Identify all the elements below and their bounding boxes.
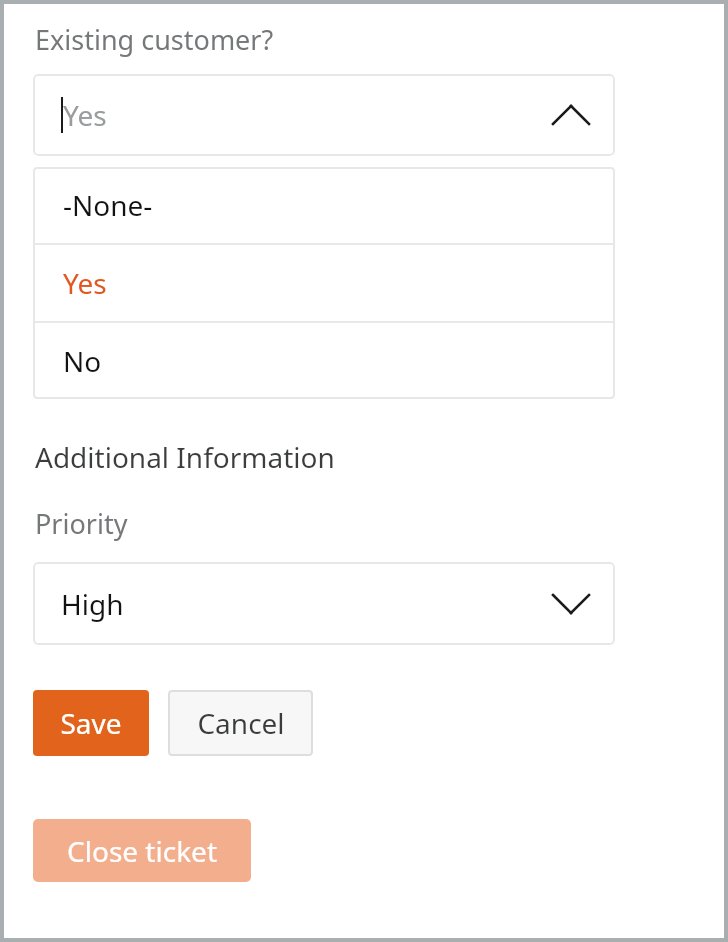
other: Collapse dropdown	[549, 102, 593, 128]
button[interactable]: Cancel	[168, 690, 313, 756]
button[interactable]: -None-	[33, 167, 615, 243]
staticText: Cancel	[197, 704, 285, 742]
staticText: Close ticket	[67, 832, 217, 870]
staticText: -None-	[63, 186, 153, 224]
other: Expand dropdown	[549, 591, 593, 617]
staticText: Yes	[63, 264, 107, 302]
button[interactable]: No	[33, 323, 615, 399]
button[interactable]: High	[33, 562, 615, 645]
staticText: High	[61, 585, 124, 623]
button[interactable]: Yes	[33, 245, 615, 321]
staticText: Existing customer?	[35, 21, 274, 58]
staticText: Additional Information	[35, 438, 335, 476]
staticText: No	[63, 342, 102, 380]
button[interactable]: Yes	[33, 74, 615, 156]
button[interactable]: Save	[33, 690, 149, 756]
button[interactable]: Close ticket	[33, 819, 251, 882]
staticText: Yes	[63, 96, 107, 134]
staticText: Save	[60, 704, 122, 742]
staticText: Priority	[35, 505, 128, 542]
